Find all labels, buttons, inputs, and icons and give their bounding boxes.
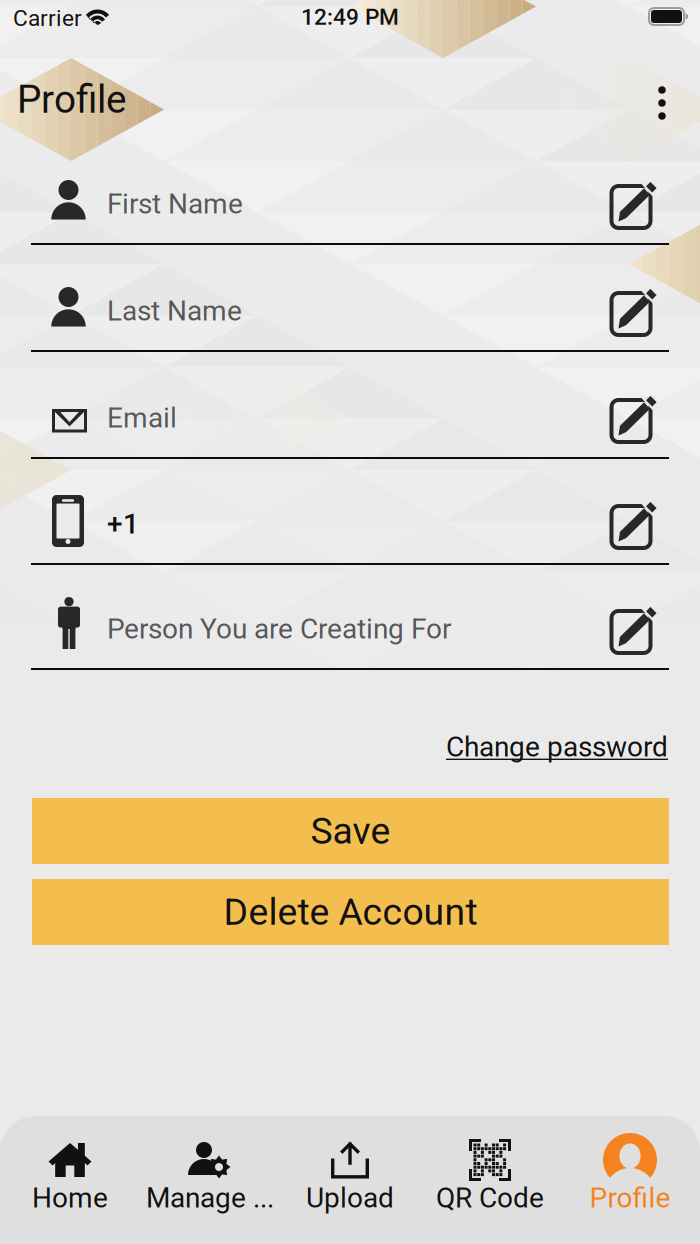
button[interactable]: Edit Person You are Creating For — [595, 596, 667, 668]
button[interactable]: Upload — [280, 1116, 420, 1244]
staticText: Email — [107, 402, 177, 434]
button[interactable]: Edit +1 — [595, 491, 667, 563]
staticText: Home — [32, 1182, 108, 1214]
button[interactable]: Edit Email — [595, 385, 667, 457]
staticText: Change password — [446, 731, 668, 763]
staticText: Carrier — [13, 5, 82, 32]
staticText: QR Code — [436, 1182, 544, 1214]
staticText: Manage ... — [146, 1182, 274, 1214]
button[interactable]: QR Code — [420, 1116, 560, 1244]
button[interactable]: More options — [634, 72, 690, 134]
staticText: Profile — [17, 77, 127, 122]
staticText: Last Name — [107, 295, 242, 327]
staticText: Save — [310, 809, 390, 853]
staticText: Person You are Creating For — [107, 613, 451, 645]
staticText: Upload — [306, 1182, 394, 1214]
staticText: 12:49 PM — [301, 4, 399, 30]
button[interactable]: Delete Account — [32, 879, 669, 945]
button[interactable]: Manage ... — [140, 1116, 280, 1244]
button[interactable]: Profile — [560, 1116, 700, 1244]
button[interactable]: Change password — [428, 725, 668, 769]
staticText: +1 — [107, 508, 139, 540]
staticText: Delete Account — [223, 890, 477, 934]
button[interactable]: Edit Last Name — [595, 278, 667, 350]
staticText: Profile — [589, 1182, 670, 1214]
button[interactable]: Home — [0, 1116, 140, 1244]
button[interactable]: Save — [32, 798, 669, 864]
staticText: First Name — [107, 188, 243, 220]
button[interactable]: Edit First Name — [595, 171, 667, 243]
